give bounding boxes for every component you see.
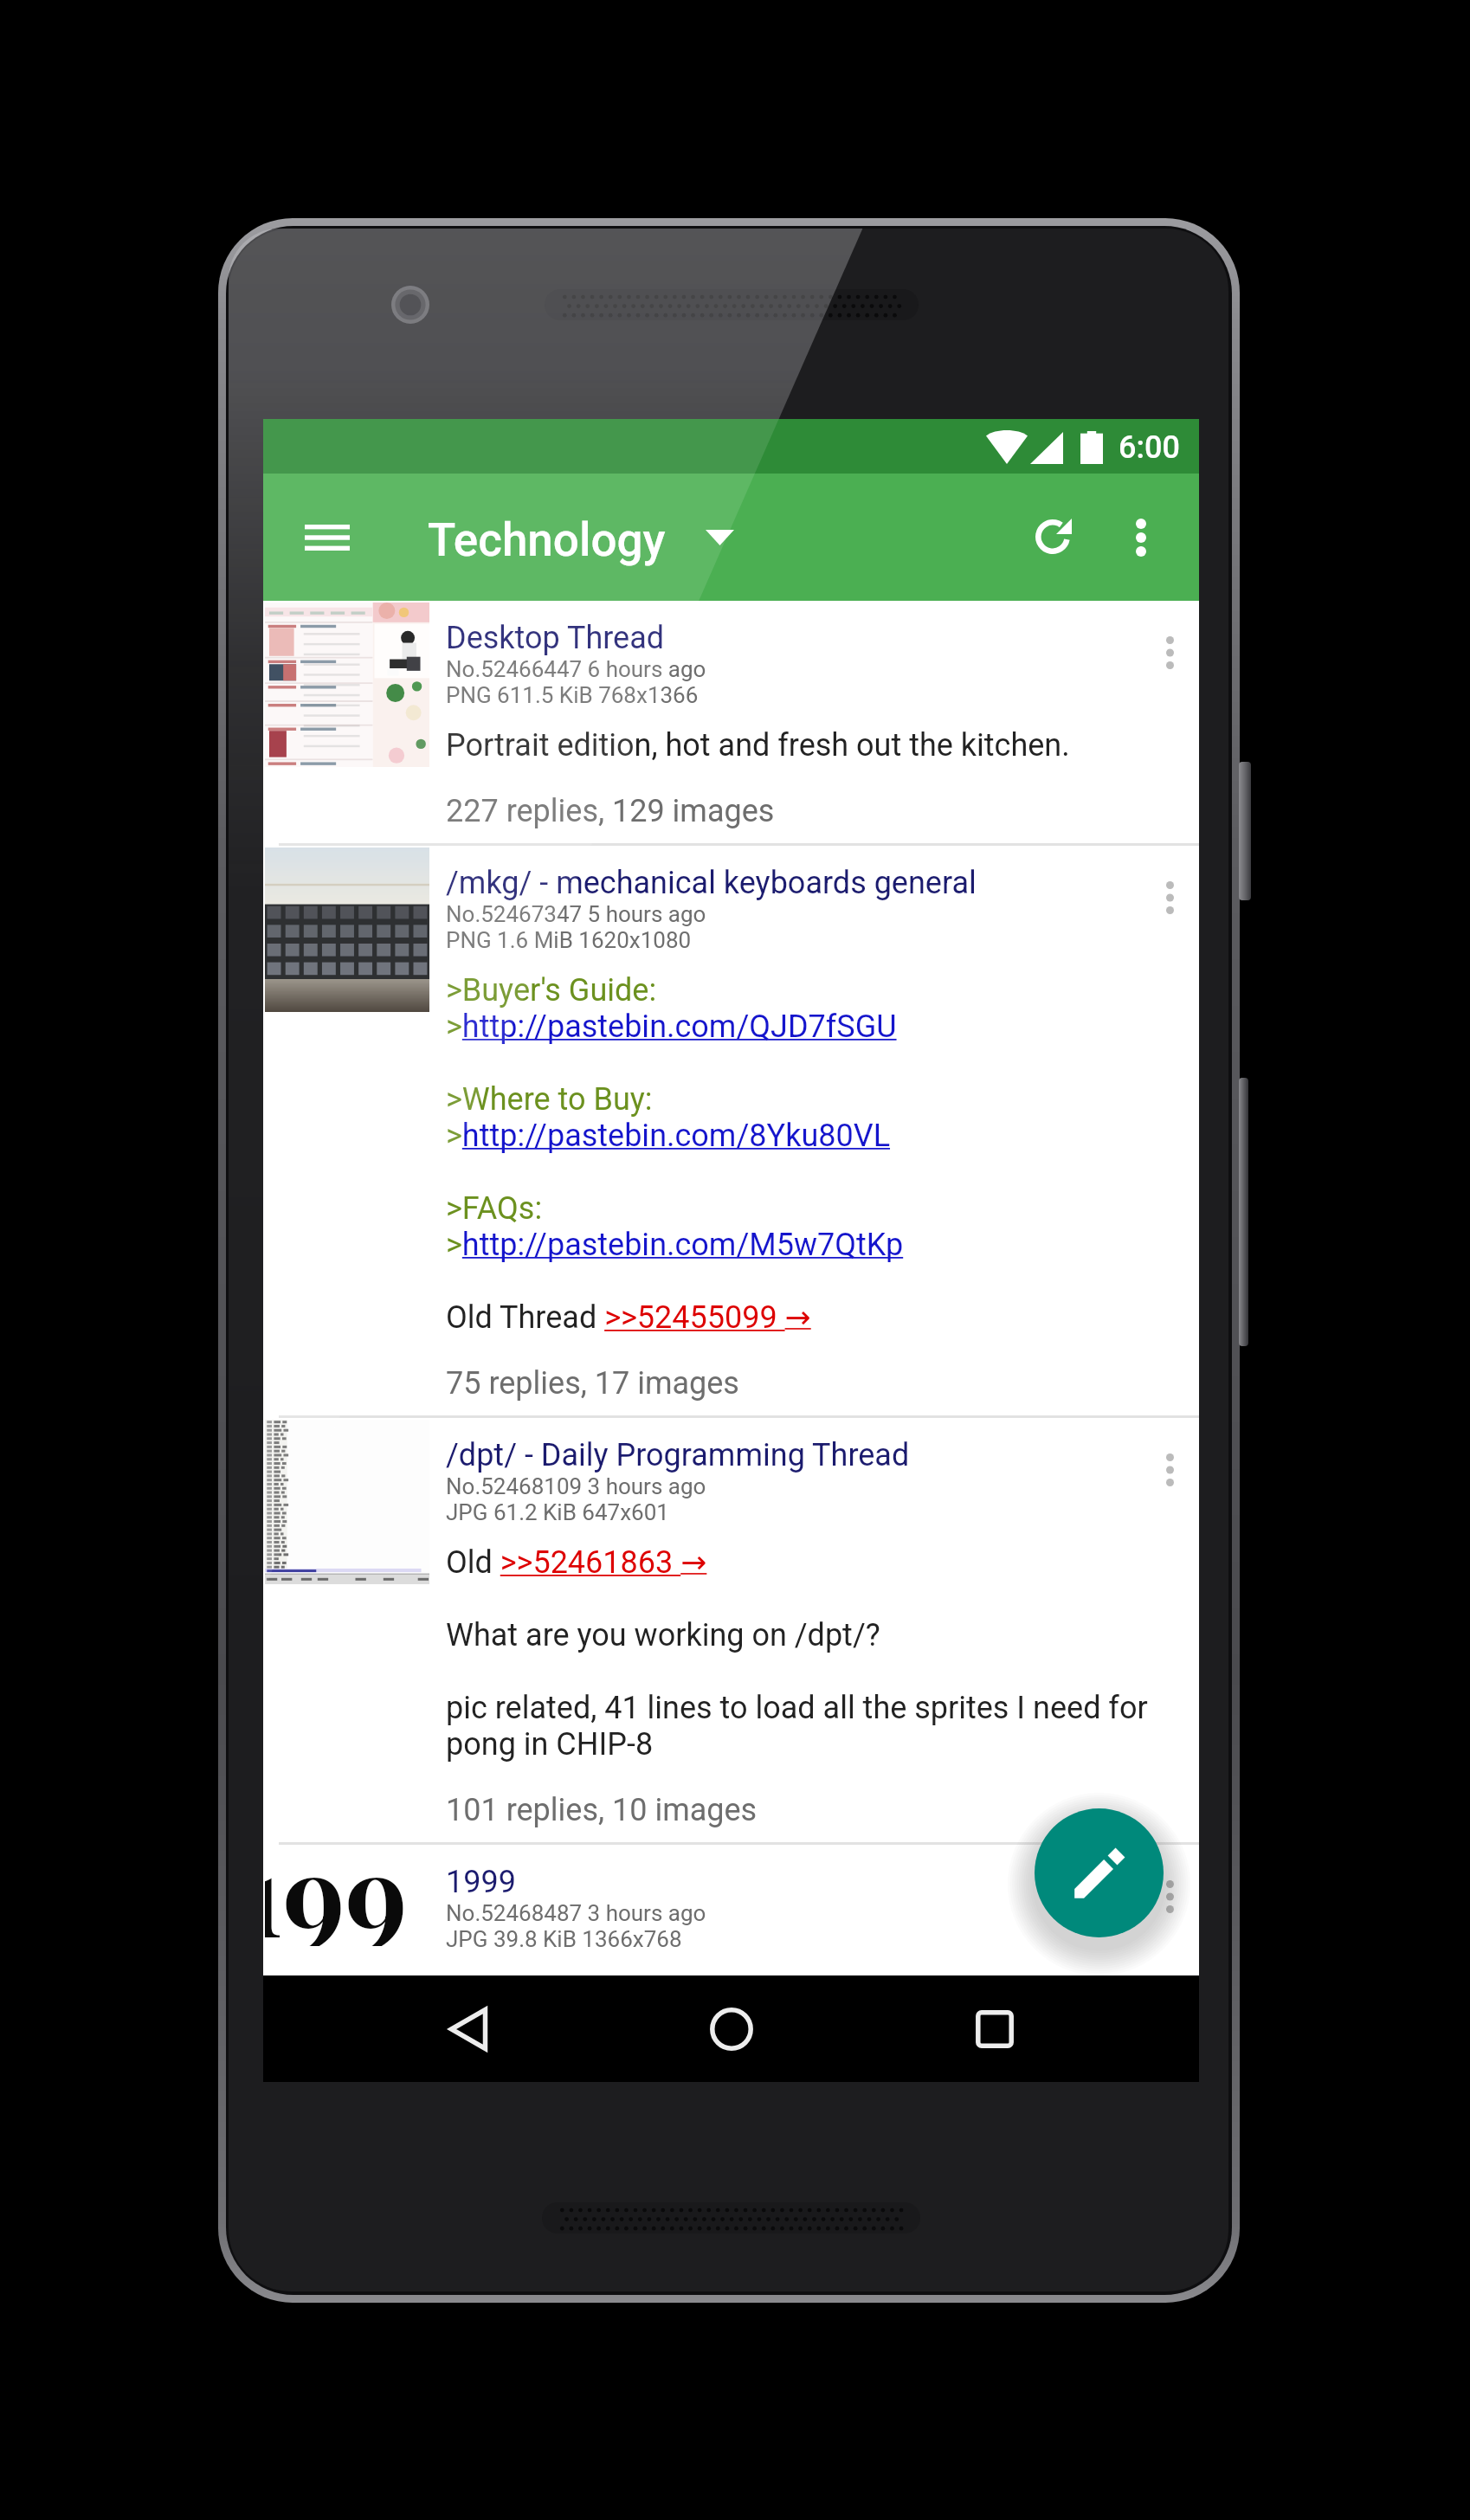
staticText: /mkg/ - mechanical keyboards general: [446, 865, 977, 901]
staticText: No.52468487 3 hours ago: [446, 1900, 706, 1926]
staticText: 227 replies, 129 images: [446, 793, 775, 829]
staticText: /dpt/ - Daily Programming Thread: [446, 1437, 910, 1473]
staticText: Desktop Thread: [446, 620, 665, 656]
button[interactable]: More options: [1091, 487, 1191, 588]
staticText: Technology: [428, 513, 666, 567]
button[interactable]: Open navigation drawer: [277, 487, 377, 588]
button[interactable]: Thread options: [1132, 604, 1208, 701]
button[interactable]: Thread options: [1132, 1421, 1208, 1518]
staticText: 75 replies, 17 images: [446, 1365, 739, 1402]
button[interactable]: 1999: [263, 1845, 1199, 1975]
staticText: JPG 39.8 KiB 1366x768: [446, 1926, 682, 1952]
staticText: JPG 61.2 KiB 647x601: [446, 1499, 669, 1525]
staticText: 6:00: [1119, 429, 1180, 466]
staticText: 101 replies, 10 images: [446, 1792, 758, 1828]
staticText: >Buyer's Guide: >http://pastebin.com/QJD…: [446, 972, 904, 1336]
button[interactable]: Technology: [419, 495, 741, 585]
button[interactable]: Thread options: [1132, 1848, 1208, 1945]
staticText: No.52466447 6 hours ago: [446, 656, 706, 682]
button[interactable]: Desktop Thread: [263, 601, 1199, 843]
button[interactable]: Home: [662, 1977, 801, 2081]
staticText: Old >>52461863 → What are you working on…: [446, 1544, 1173, 1763]
button[interactable]: Recents: [925, 1977, 1064, 2081]
button[interactable]: /mkg/ - mechanical keyboards general: [263, 846, 1199, 1415]
button[interactable]: Refresh: [1005, 487, 1106, 587]
button[interactable]: Thread options: [1132, 849, 1208, 946]
staticText: Portrait edition, hot and fresh out the …: [446, 727, 1070, 764]
staticText: PNG 1.6 MiB 1620x1080: [446, 927, 692, 953]
staticText: 1999: [265, 1846, 404, 1946]
staticText: 1999: [446, 1864, 516, 1900]
staticText: No.52468109 3 hours ago: [446, 1473, 706, 1499]
staticText: No.52467347 5 hours ago: [446, 901, 706, 927]
button[interactable]: /dpt/ - Daily Programming Thread: [263, 1418, 1199, 1842]
button[interactable]: Back: [399, 1977, 538, 2081]
staticText: PNG 611.5 KiB 768x1366: [446, 682, 699, 708]
button[interactable]: New thread: [1035, 1808, 1164, 1937]
